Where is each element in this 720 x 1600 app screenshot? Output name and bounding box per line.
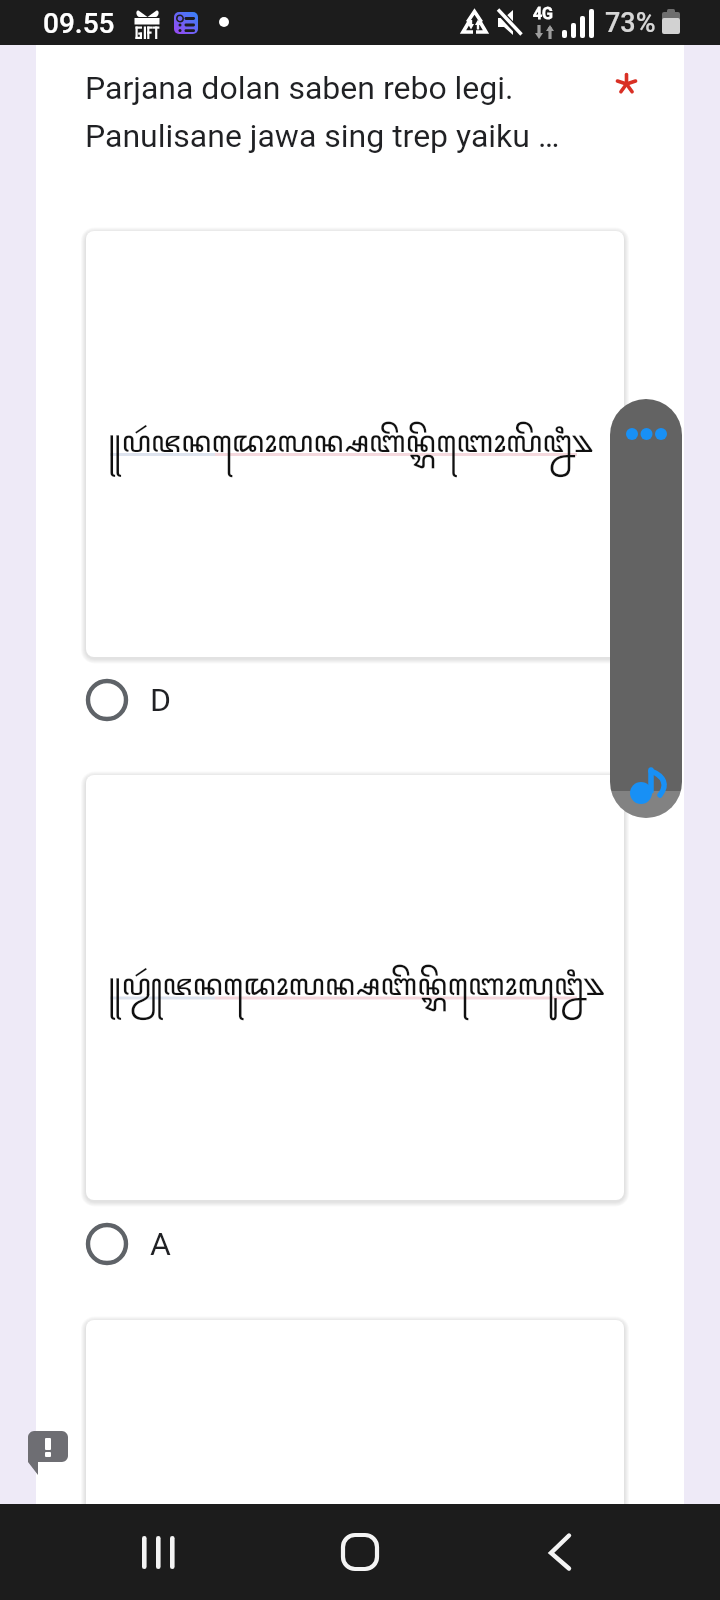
button[interactable]: Floating music assistant xyxy=(610,399,682,818)
staticText: D xyxy=(150,681,171,719)
staticText: ꧋ꦥꦾꦂꦗꦤꦢꦺꦴꦭꦤ꧀ꦱꦧꦼꦤ꧀ꦫꦼꦧꦺꦴꦭꦸ꧒ꦶ꧉ xyxy=(108,961,624,1023)
staticText: 4G xyxy=(533,4,553,23)
button[interactable]: ꧋ꦥꦂꦗꦤꦢꦺꦴꦭꦤ꧀ꦱꦧꦼꦤ꧀ꦫꦼꦧꦺꦴꦭꦼ꧒ꦶ꧉ xyxy=(86,231,624,657)
staticText: 73% xyxy=(605,7,656,39)
button[interactable]: Back xyxy=(520,1520,600,1584)
button[interactable] xyxy=(86,1320,624,1580)
button[interactable]: Recent apps xyxy=(119,1520,199,1584)
staticText: 09.55 xyxy=(43,7,115,40)
staticText: Parjana dolan saben rebo legi. Panulisan… xyxy=(85,69,560,155)
button[interactable]: ꧋ꦥꦾꦂꦗꦤꦢꦺꦴꦭꦤ꧀ꦱꦧꦼꦤ꧀ꦫꦼꦧꦺꦴꦭꦸ꧒ꦶ꧉ xyxy=(86,775,624,1200)
button[interactable]: D xyxy=(82,670,616,730)
button[interactable]: Home xyxy=(320,1520,400,1584)
button[interactable]: Send feedback xyxy=(28,1431,68,1477)
staticText: A xyxy=(150,1225,171,1263)
staticText: ꧋ꦥꦂꦗꦤꦢꦺꦴꦭꦤ꧀ꦱꦧꦼꦤ꧀ꦫꦼꦧꦺꦴꦭꦼ꧒ꦶ꧉ xyxy=(108,418,624,480)
button[interactable]: A xyxy=(82,1214,616,1274)
